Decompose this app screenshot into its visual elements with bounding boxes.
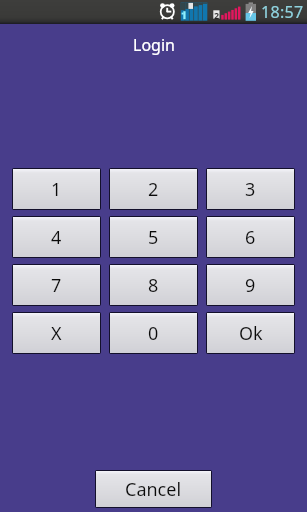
staticText: Cancel <box>125 477 182 502</box>
staticText: Ok <box>239 321 263 346</box>
button[interactable]: 1 <box>13 169 100 209</box>
staticText: 1 <box>51 177 62 202</box>
staticText: 8 <box>148 273 159 298</box>
staticText: 7 <box>51 273 62 298</box>
staticText: 9 <box>245 273 256 298</box>
staticText: 2 <box>214 9 220 21</box>
button[interactable]: 3 <box>207 169 294 209</box>
staticText: 4 <box>51 225 62 250</box>
button[interactable]: 9 <box>207 265 294 305</box>
button[interactable]: 8 <box>110 265 197 305</box>
staticText: X <box>51 321 62 346</box>
button[interactable]: 4 <box>13 217 100 257</box>
staticText: 5 <box>148 225 159 250</box>
button[interactable]: Ok <box>207 313 294 353</box>
button[interactable]: X <box>13 313 100 353</box>
button[interactable]: Cancel <box>96 471 211 507</box>
staticText: 6 <box>245 225 256 250</box>
staticText: 18:57 <box>261 1 304 23</box>
staticText: 0 <box>148 321 159 346</box>
staticText: 3 <box>245 177 256 202</box>
button[interactable]: 6 <box>207 217 294 257</box>
staticText: Login <box>133 34 175 56</box>
button[interactable]: 0 <box>110 313 197 353</box>
button[interactable]: 7 <box>13 265 100 305</box>
button[interactable]: 2 <box>110 169 197 209</box>
staticText: 2 <box>148 177 159 202</box>
button[interactable]: 5 <box>110 217 197 257</box>
